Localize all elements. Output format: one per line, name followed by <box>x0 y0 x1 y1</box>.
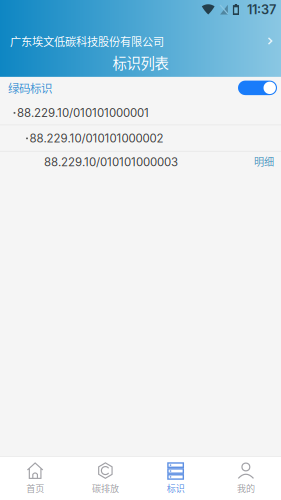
staticText: 明细 <box>254 154 274 169</box>
staticText: 标识 <box>167 482 185 495</box>
button[interactable]: 首页 <box>0 456 70 500</box>
button[interactable]: 我的 <box>211 456 281 500</box>
staticText: 88.229.10/010101000002 <box>29 131 163 145</box>
staticText: 88.229.10/010101000001 <box>17 106 149 120</box>
button[interactable]: 88.229.10/010101000002 <box>0 125 281 151</box>
button[interactable]: 绿码标识开关 <box>238 81 277 95</box>
button[interactable]: 88.229.10/010101000003 <box>0 152 281 177</box>
staticText: 首页 <box>26 482 44 495</box>
button[interactable]: 88.229.10/010101000001 <box>0 99 281 124</box>
button[interactable]: 碳排放 <box>70 456 140 500</box>
staticText: 绿码标识 <box>8 79 52 96</box>
staticText: 广东埃文低碳科技股份有限公司 <box>10 33 164 49</box>
staticText: 标识列表 <box>112 52 168 73</box>
button[interactable]: 广东埃文低碳科技股份有限公司 <box>0 31 281 51</box>
staticText: 我的 <box>237 482 255 495</box>
staticText: 88.229.10/010101000003 <box>44 155 178 169</box>
staticText: 碳排放 <box>92 482 119 495</box>
staticText: 11:37 <box>247 2 276 17</box>
button[interactable]: 标识 <box>140 456 211 500</box>
